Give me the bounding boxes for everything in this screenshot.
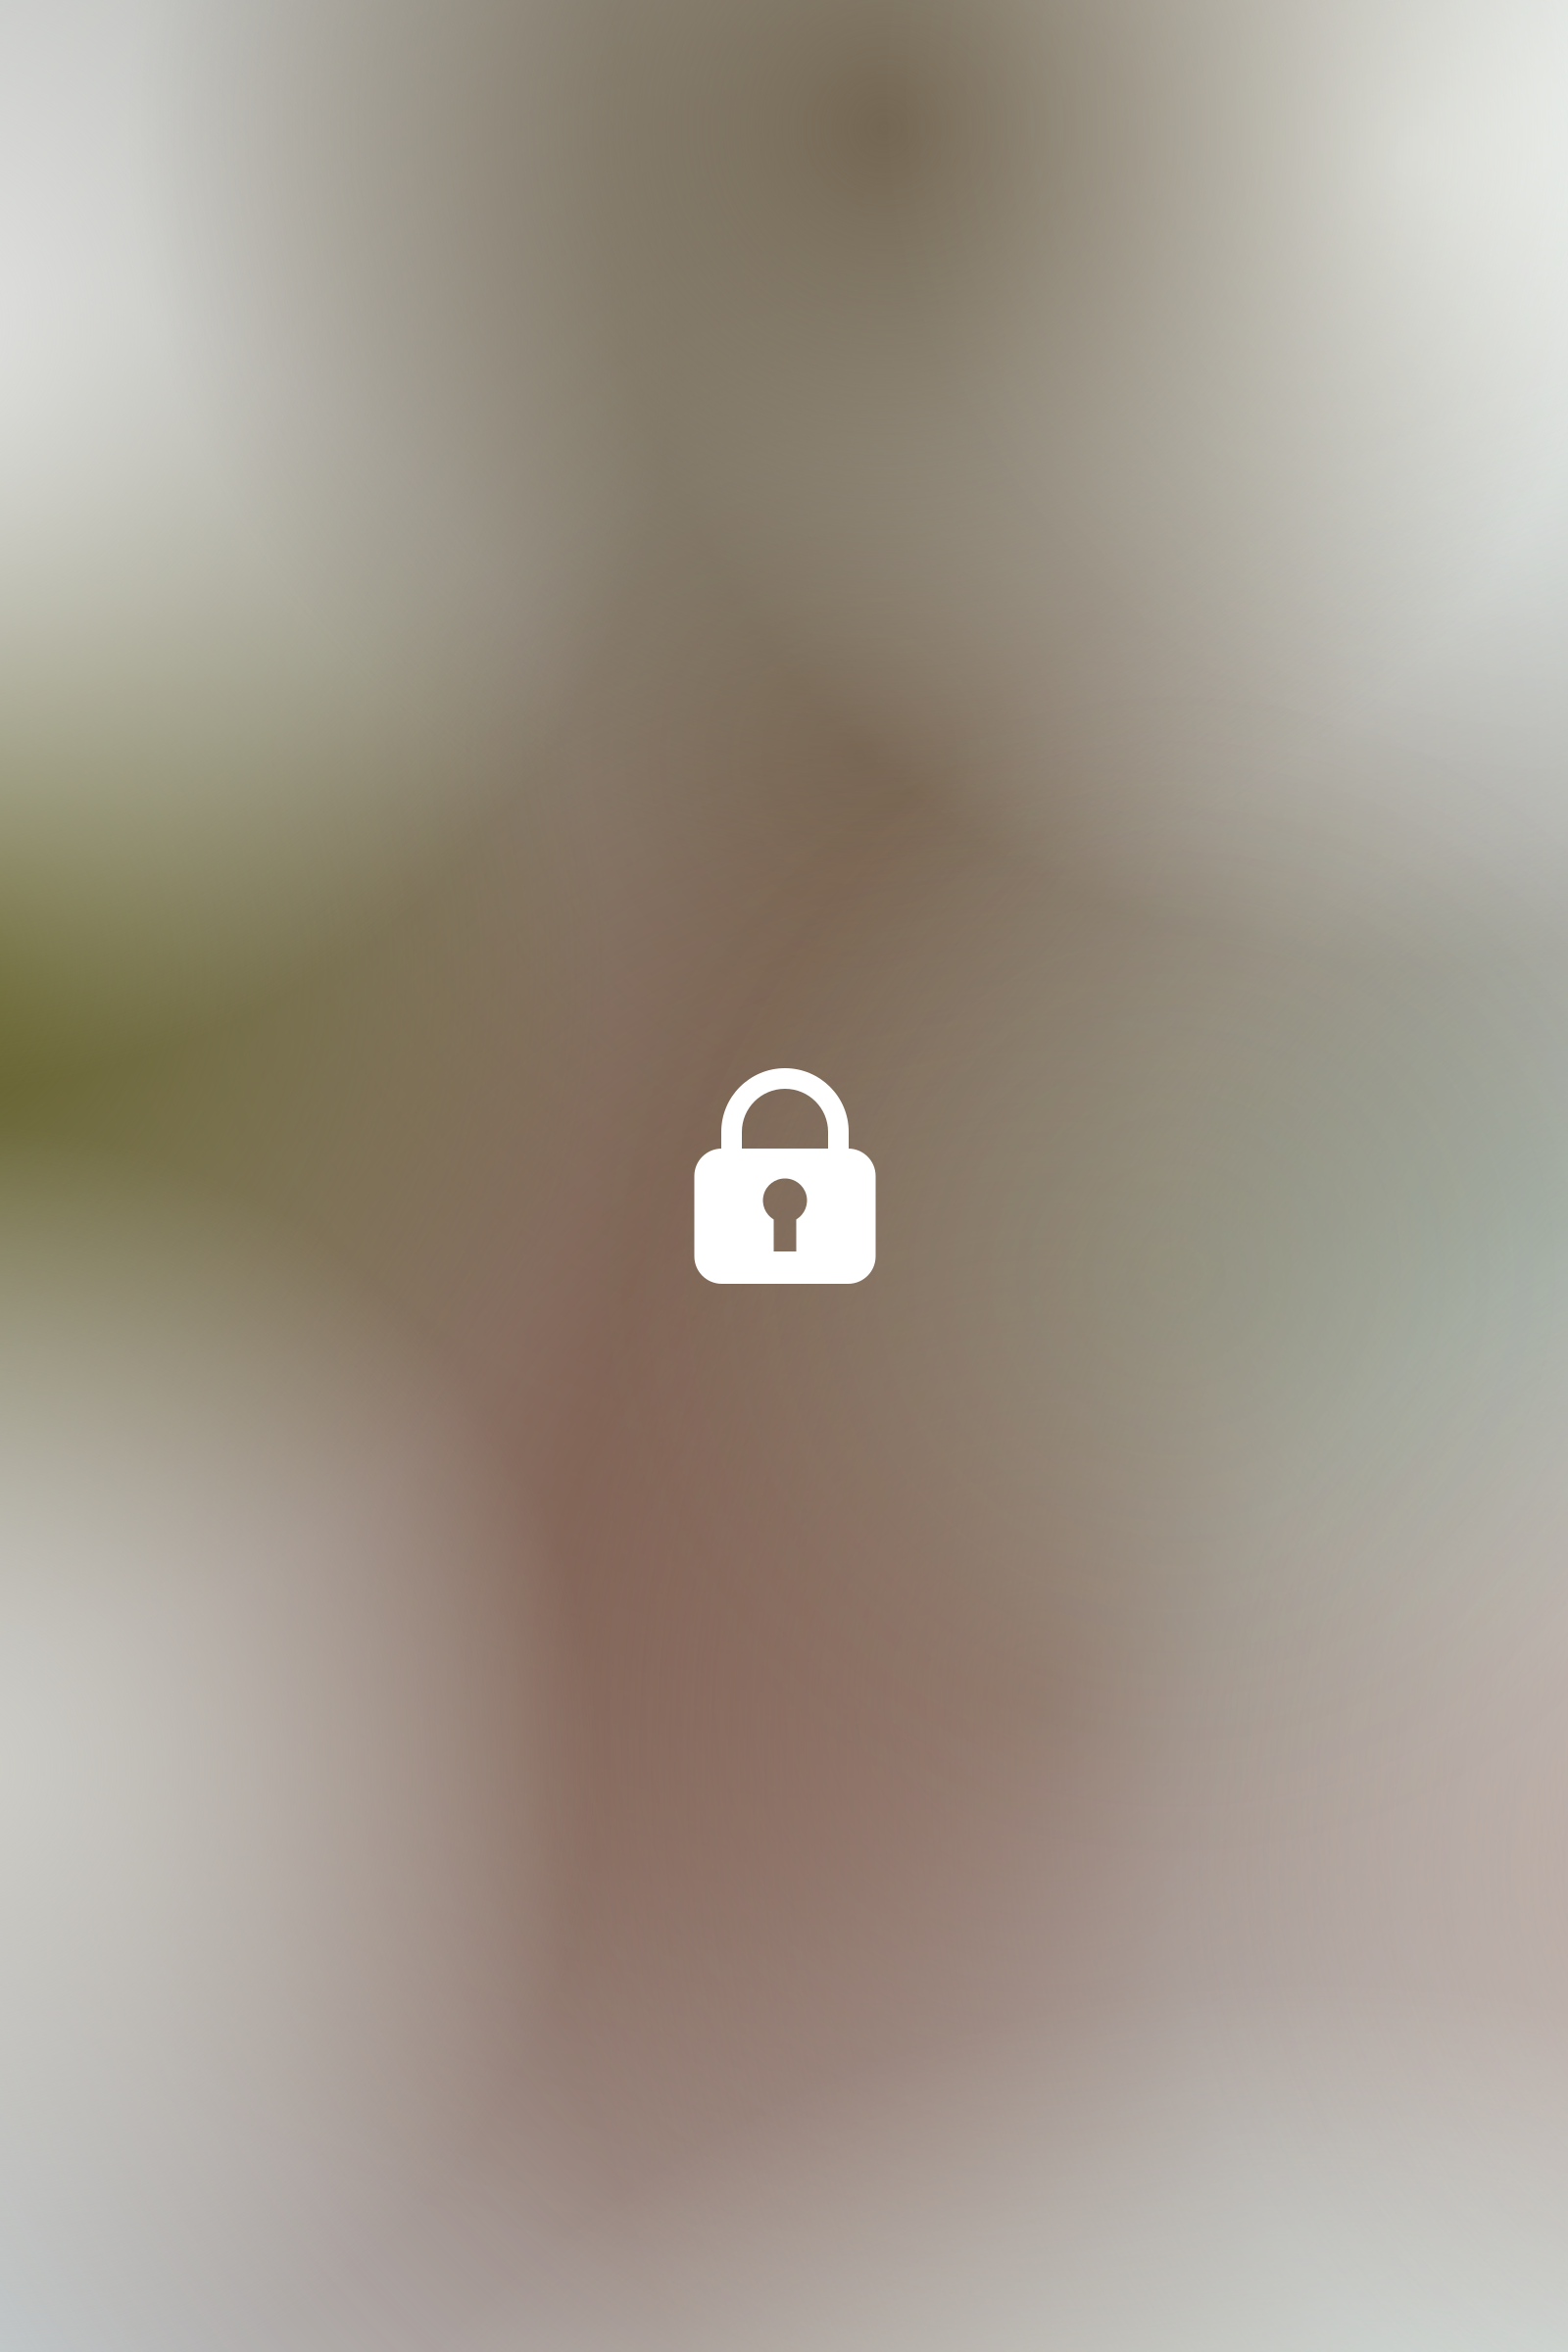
button[interactable]: Unlock	[0, 0, 1568, 2352]
